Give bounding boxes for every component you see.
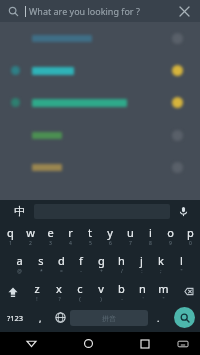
- button[interactable]: Change language: [50, 305, 70, 330]
- staticText: *: [40, 268, 43, 275]
- staticText: m: [158, 281, 169, 296]
- button[interactable]: h: [111, 250, 131, 278]
- staticText: i: [149, 225, 152, 240]
- staticText: -: [121, 296, 123, 303]
- staticText: (: [79, 296, 81, 303]
- button[interactable]: Home: [75, 332, 101, 355]
- staticText: .: [157, 312, 160, 324]
- button[interactable]: w: [20, 222, 40, 250]
- staticText: 7: [129, 240, 132, 247]
- staticText: s: [38, 253, 44, 268]
- staticText: ;: [160, 268, 162, 275]
- button[interactable]: ,: [30, 305, 50, 330]
- button[interactable]: m: [153, 278, 174, 305]
- button[interactable]: l: [171, 250, 191, 278]
- button[interactable]: t: [80, 222, 100, 250]
- other: Search: [8, 6, 19, 17]
- button[interactable]: f: [71, 250, 91, 278]
- button[interactable]: p: [180, 222, 200, 250]
- staticText: h: [118, 253, 125, 268]
- staticText: l: [180, 253, 183, 268]
- button[interactable]: 中: [4, 200, 34, 222]
- staticText: 拼音: [102, 314, 116, 323]
- staticText: x: [56, 281, 62, 296]
- staticText: ?123: [7, 313, 24, 323]
- staticText: 6: [109, 240, 112, 247]
- staticText: +: [100, 268, 103, 275]
- button[interactable]: Keyboard switcher: [172, 333, 194, 355]
- button[interactable]: q: [0, 222, 20, 250]
- button[interactable]: [32, 132, 62, 139]
- button[interactable]: u: [120, 222, 140, 250]
- button[interactable]: o: [160, 222, 180, 250]
- staticText: 5: [89, 240, 92, 247]
- button[interactable]: ?123: [0, 305, 30, 330]
- button[interactable]: [32, 35, 92, 42]
- staticText: What are you looking for ?: [29, 5, 140, 17]
- staticText: o: [167, 225, 174, 240]
- button[interactable]: Recents: [132, 332, 158, 355]
- staticText: :: [141, 268, 143, 275]
- staticText: p: [187, 225, 194, 240]
- staticText: u: [127, 225, 134, 240]
- staticText: w: [26, 225, 35, 240]
- button[interactable]: k: [151, 250, 171, 278]
- staticText: 9: [169, 240, 172, 247]
- button[interactable]: Voice input: [170, 200, 196, 222]
- staticText: 2: [29, 240, 32, 247]
- staticText: 中: [14, 204, 25, 218]
- staticText: e: [47, 225, 54, 240]
- staticText: ?: [58, 296, 61, 303]
- staticText: 1: [9, 240, 12, 247]
- staticText: q: [7, 225, 14, 240]
- staticText: z: [34, 281, 40, 296]
- staticText: b: [118, 281, 125, 296]
- staticText: =: [60, 268, 63, 275]
- staticText: c: [77, 281, 83, 296]
- button[interactable]: e: [40, 222, 60, 250]
- button[interactable]: Search: [0, 0, 200, 22]
- button[interactable]: Clear: [176, 3, 192, 19]
- button[interactable]: g: [91, 250, 111, 278]
- staticText: 3: [49, 240, 52, 247]
- staticText: a: [16, 253, 23, 268]
- button[interactable]: Search: [168, 305, 200, 330]
- button[interactable]: x: [48, 278, 69, 305]
- staticText: d: [58, 253, 65, 268]
- button[interactable]: [32, 99, 127, 107]
- button[interactable]: Shift: [0, 278, 26, 305]
- staticText: -: [80, 268, 82, 275]
- button[interactable]: s: [30, 250, 51, 278]
- staticText: y: [107, 225, 113, 240]
- staticText: ): [100, 296, 102, 303]
- staticText: ": [180, 268, 183, 275]
- button[interactable]: r: [60, 222, 80, 250]
- button[interactable]: i: [140, 222, 160, 250]
- staticText: r: [68, 225, 73, 240]
- button[interactable]: 拼音: [70, 310, 148, 326]
- button[interactable]: v: [90, 278, 111, 305]
- staticText: /: [121, 268, 123, 275]
- staticText: 0: [189, 240, 192, 247]
- button[interactable]: Back: [18, 332, 44, 355]
- button[interactable]: j: [131, 250, 151, 278]
- button[interactable]: y: [100, 222, 120, 250]
- button[interactable]: z: [26, 278, 48, 305]
- staticText: j: [140, 253, 143, 268]
- staticText: ,: [39, 312, 42, 324]
- button[interactable]: .: [148, 305, 168, 330]
- button[interactable]: [32, 164, 62, 171]
- staticText: ': [142, 296, 144, 303]
- button[interactable]: Backspace: [174, 278, 200, 305]
- button[interactable]: d: [51, 250, 71, 278]
- button[interactable]: n: [132, 278, 153, 305]
- staticText: k: [158, 253, 164, 268]
- button[interactable]: b: [111, 278, 132, 305]
- button[interactable]: a: [9, 250, 30, 278]
- button[interactable]: c: [69, 278, 90, 305]
- staticText: n: [139, 281, 146, 296]
- button[interactable]: [32, 67, 74, 75]
- staticText: t: [88, 225, 92, 240]
- staticText: g: [98, 253, 105, 268]
